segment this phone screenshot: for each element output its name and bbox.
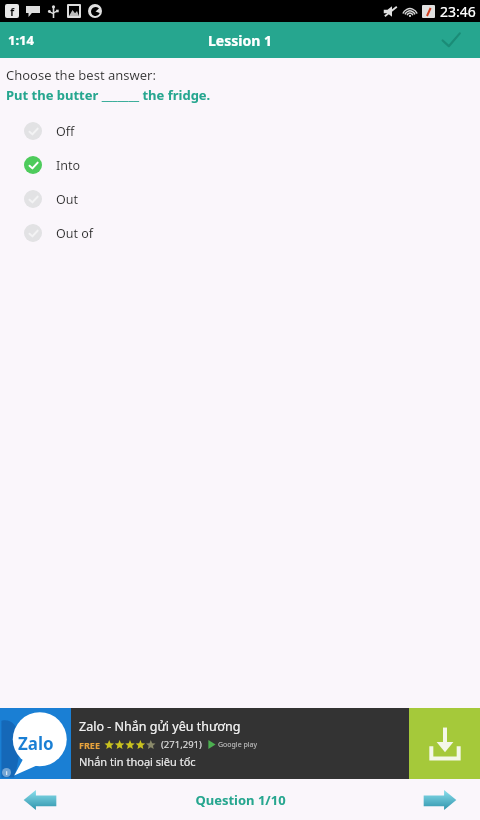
staticText: Zalo - Nhắn gửi yêu thương <box>79 718 241 735</box>
button[interactable]: Zalo <box>0 708 480 779</box>
staticText: Out <box>56 191 79 208</box>
button[interactable]: Off <box>6 114 480 148</box>
staticText: 1:14 <box>8 31 34 49</box>
staticText: Question 1/10 <box>195 791 286 809</box>
staticText: 23:46 <box>440 2 476 21</box>
staticText: Choose the best answer: <box>6 66 156 84</box>
staticText: f <box>10 4 15 18</box>
staticText: Google play <box>218 740 258 750</box>
button[interactable]: Submit answer <box>422 22 480 58</box>
staticText: Put the butter _______ the fridge. <box>6 86 211 104</box>
button[interactable]: Next question <box>400 779 480 820</box>
staticText: i <box>6 769 8 777</box>
staticText: Nhắn tin thoại siêu tốc <box>79 754 196 769</box>
button[interactable]: Out <box>6 182 480 216</box>
staticText: Zalo <box>18 732 54 755</box>
button[interactable]: Out of <box>6 216 480 250</box>
staticText: Lession 1 <box>208 31 272 50</box>
staticText: (271,291) <box>161 738 202 751</box>
staticText: FREE <box>79 739 100 751</box>
button[interactable]: Previous question <box>0 779 80 820</box>
staticText: Into <box>56 157 81 174</box>
staticText: Out of <box>56 225 94 242</box>
button[interactable]: Into <box>6 148 480 182</box>
button[interactable]: Install <box>409 708 480 779</box>
staticText: Off <box>56 123 75 140</box>
